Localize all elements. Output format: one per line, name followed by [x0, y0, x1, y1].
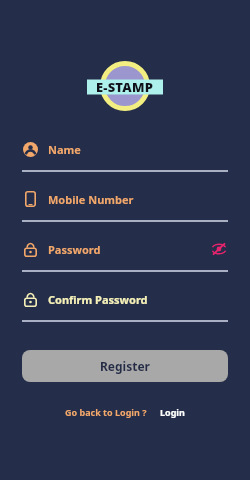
staticText: E-STAMP	[96, 78, 154, 96]
staticText: Confirm Password	[48, 292, 148, 307]
button[interactable]: Name	[22, 136, 228, 172]
button[interactable]: Password	[22, 236, 228, 272]
staticText: Password	[48, 242, 101, 257]
staticText: Register	[100, 358, 150, 374]
staticText: Name	[48, 142, 81, 157]
staticText: Mobile Number	[48, 192, 134, 207]
staticText: Login	[160, 406, 185, 418]
button[interactable]: Toggle password visibility	[210, 240, 228, 258]
staticText: Go back to Login ?	[65, 406, 147, 418]
button[interactable]: Mobile Number	[22, 186, 228, 222]
button[interactable]: Go back to Login ?	[64, 404, 148, 420]
button[interactable]: Login	[159, 404, 186, 420]
button[interactable]: Register	[22, 350, 228, 382]
button[interactable]: Confirm Password	[22, 286, 228, 322]
